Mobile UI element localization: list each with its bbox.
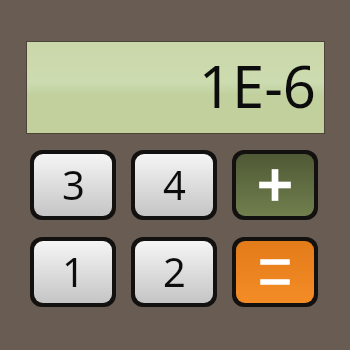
- button[interactable]: Equals: [232, 237, 318, 307]
- staticText: 4: [163, 157, 186, 211]
- button[interactable]: 1E-6: [26, 41, 325, 134]
- staticText: 1: [62, 244, 85, 298]
- button[interactable]: 2: [131, 237, 217, 307]
- staticText: 3: [62, 157, 85, 211]
- staticText: 1E-6: [198, 46, 316, 125]
- button[interactable]: 1: [30, 237, 116, 307]
- button[interactable]: Plus: [232, 150, 318, 220]
- button[interactable]: 3: [30, 150, 116, 220]
- staticText: 2: [163, 244, 186, 298]
- button[interactable]: 4: [131, 150, 217, 220]
